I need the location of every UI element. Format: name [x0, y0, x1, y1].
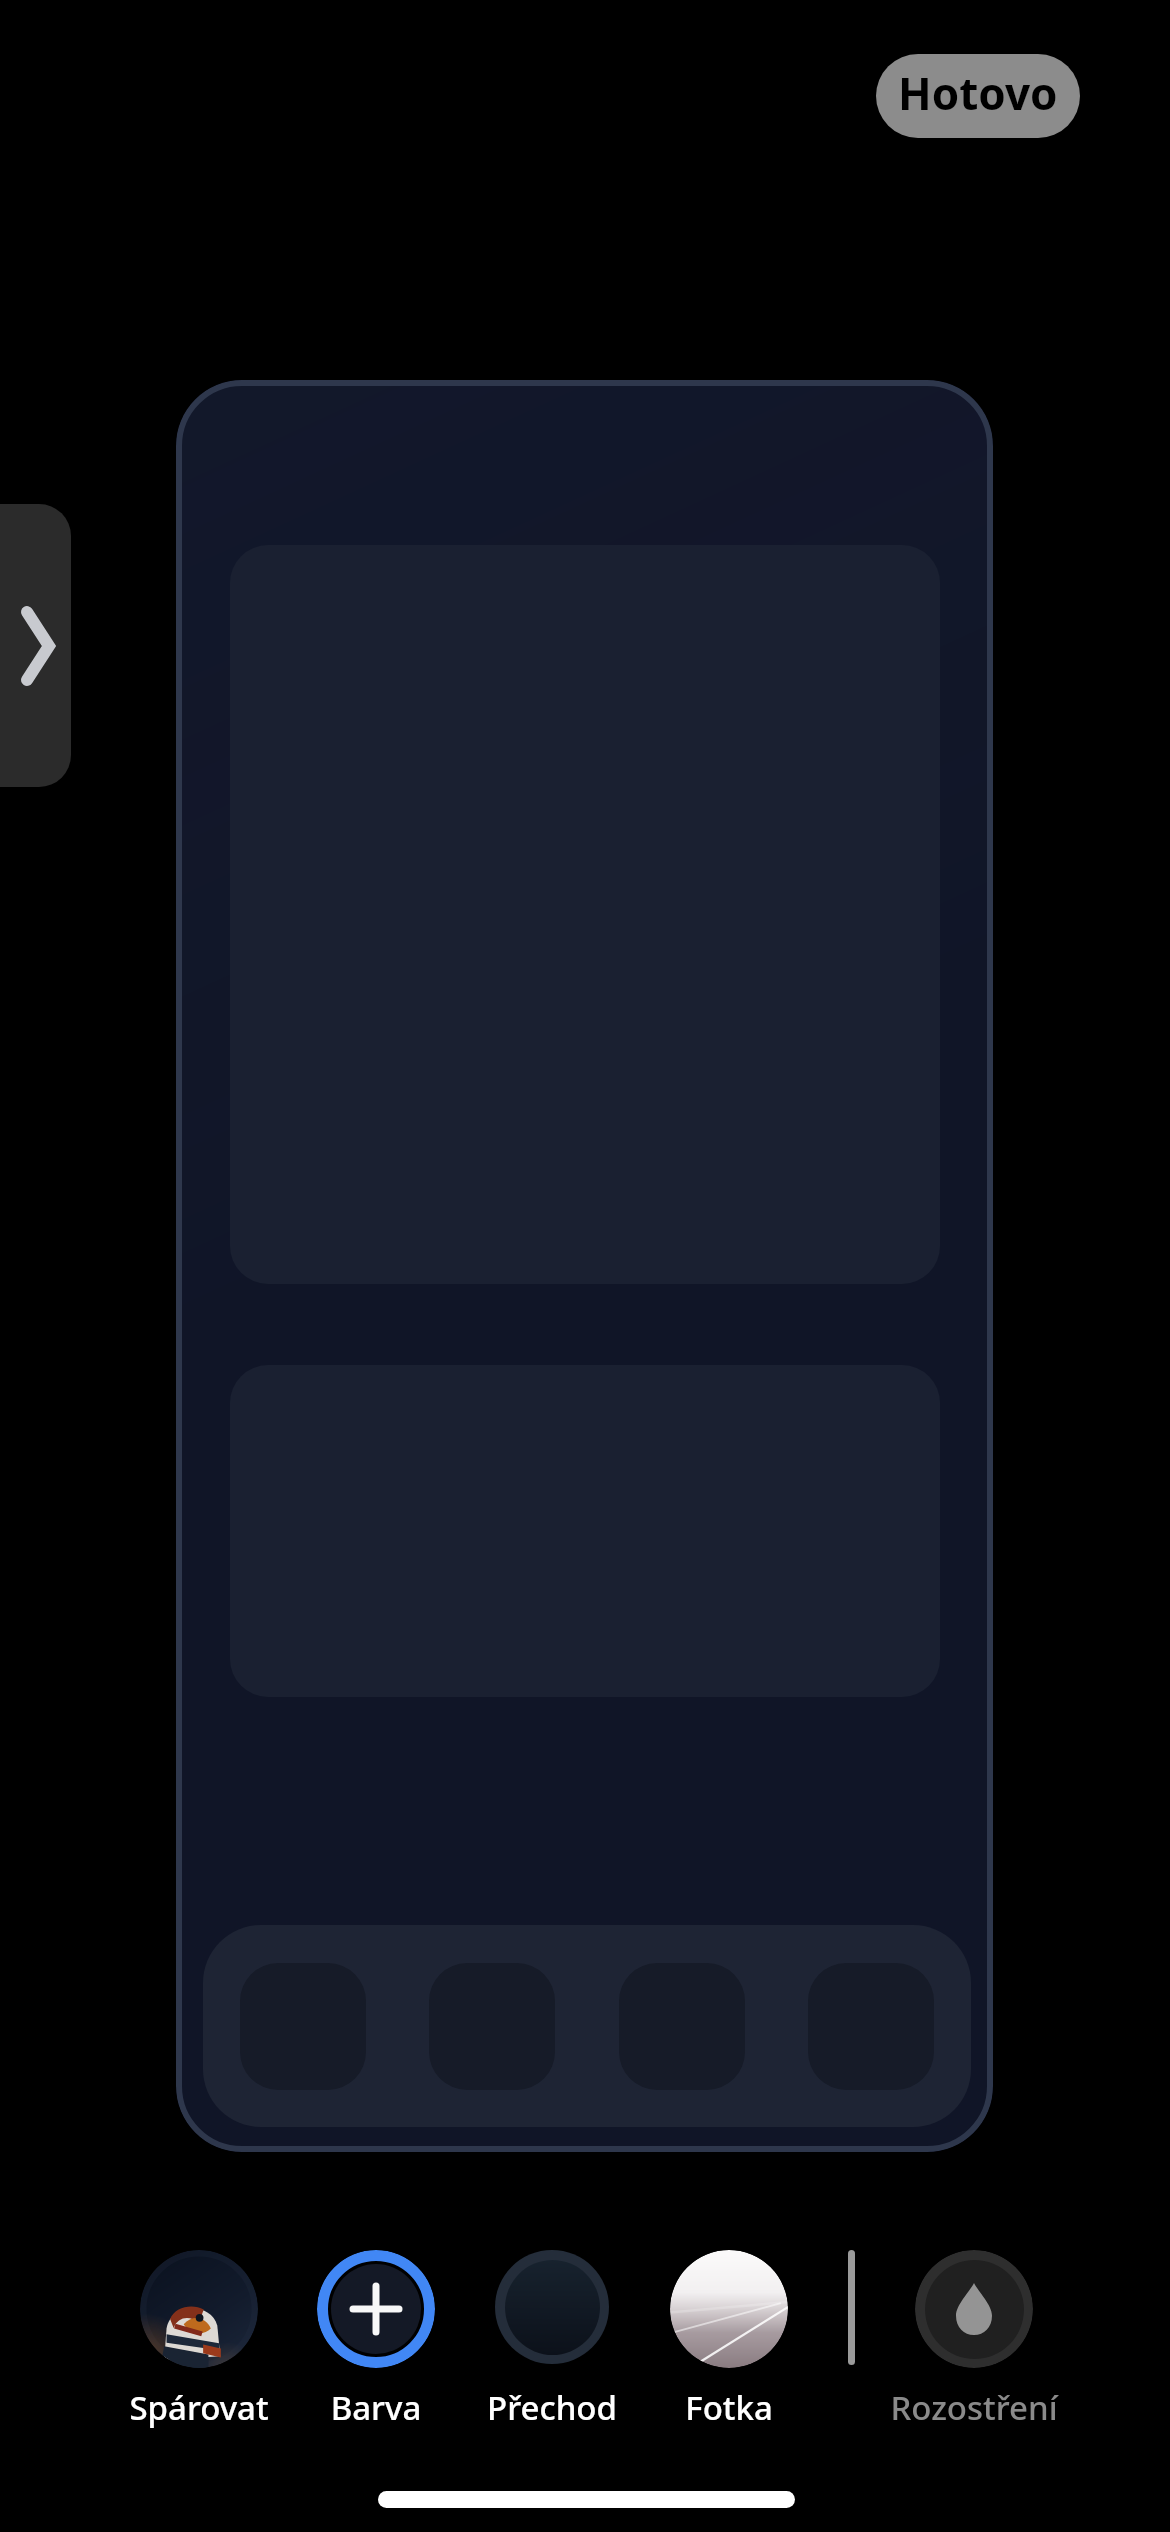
button[interactable]: Spárovat [140, 2250, 258, 2368]
staticText: Fotka [579, 2385, 879, 2430]
button[interactable]: App 1 [240, 1963, 366, 2090]
button[interactable]: Rozostření [915, 2250, 1033, 2368]
staticText: Hotovo [898, 63, 1058, 123]
button[interactable]: Přechod [495, 2250, 609, 2364]
button[interactable]: Fotka [670, 2250, 788, 2368]
staticText: Rozostření [824, 2385, 1124, 2430]
staticText: Přechod [402, 2385, 702, 2430]
staticText: Barva [226, 2385, 526, 2430]
button[interactable]: Open panel [0, 504, 71, 787]
button[interactable]: App 2 [429, 1963, 555, 2090]
button[interactable]: Barva [317, 2250, 435, 2368]
staticText: Spárovat [49, 2385, 349, 2430]
button[interactable]: App 4 [808, 1963, 934, 2090]
button[interactable]: Hotovo [876, 54, 1080, 138]
button[interactable]: App 3 [619, 1963, 745, 2090]
